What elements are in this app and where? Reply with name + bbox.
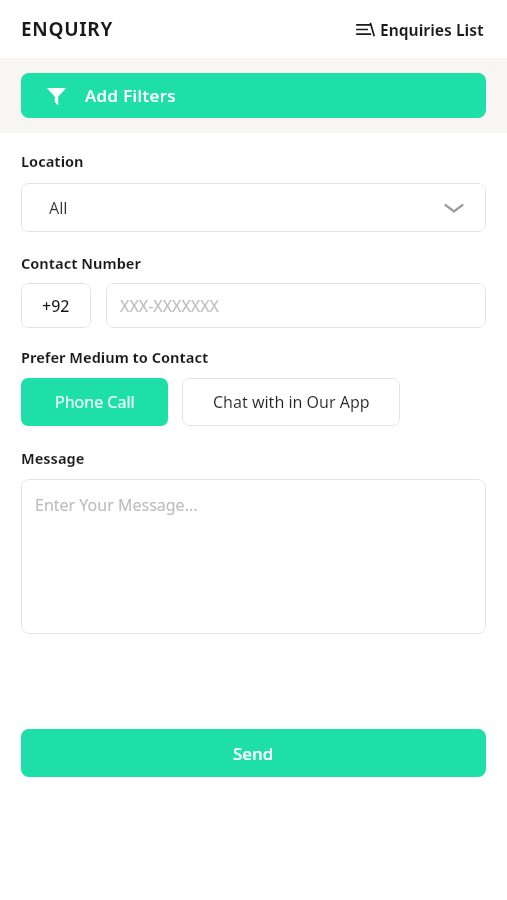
button[interactable]: +92 [21, 283, 91, 328]
staticText: Message [21, 448, 85, 468]
staticText: Prefer Medium to Contact [21, 347, 209, 367]
button[interactable]: Enter Your Message... [21, 479, 486, 634]
button[interactable]: Add Filters [21, 73, 486, 118]
button[interactable]: Phone Call [21, 378, 168, 426]
staticText: Add Filters [85, 84, 176, 107]
staticText: Contact Number [21, 253, 141, 273]
button[interactable]: Chat with in Our App [182, 378, 400, 426]
button[interactable]: Send [21, 729, 486, 777]
staticText: ENQUIRY [21, 16, 114, 42]
button[interactable]: XXX-XXXXXXX [106, 283, 486, 328]
button[interactable]: All [21, 183, 486, 232]
staticText: XXX-XXXXXXX [120, 295, 219, 317]
button[interactable]: Enquiries List [355, 13, 486, 46]
other: Enquiries List [357, 23, 374, 36]
staticText: +92 [42, 295, 70, 317]
staticText: Enter Your Message... [35, 494, 198, 516]
staticText: All [49, 197, 68, 219]
staticText: Enquiries List [380, 19, 484, 40]
staticText: Location [21, 151, 84, 171]
staticText: Send [233, 742, 274, 765]
staticText: Chat with in Our App [213, 391, 370, 413]
staticText: Phone Call [55, 391, 135, 413]
